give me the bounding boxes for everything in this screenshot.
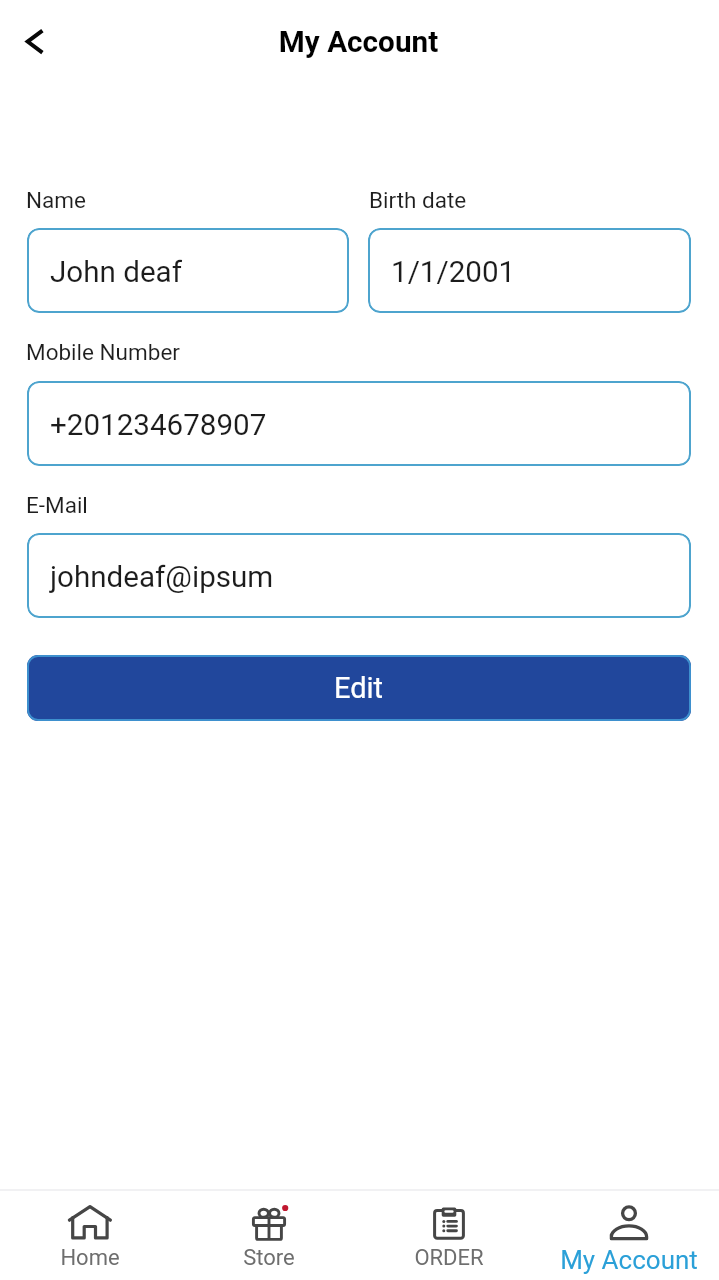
button[interactable]: Store [179, 1191, 359, 1271]
staticText: My Account [560, 1245, 698, 1275]
staticText: E-Mail [26, 492, 88, 518]
staticText: Edit [334, 671, 384, 705]
button[interactable]: +201234678907 [27, 381, 691, 466]
staticText: Birth date [369, 187, 467, 213]
button[interactable]: 1/1/2001 [368, 228, 691, 313]
staticText: John deaf [50, 255, 182, 290]
button[interactable]: John deaf [27, 228, 349, 313]
staticText: +201234678907 [50, 408, 267, 443]
button[interactable]: johndeaf@ipsum [27, 533, 691, 618]
staticText: 1/1/2001 [391, 255, 516, 290]
staticText: johndeaf@ipsum [50, 560, 274, 595]
button[interactable]: ORDER [359, 1191, 539, 1271]
button[interactable]: Home [0, 1191, 179, 1271]
button[interactable]: Edit [27, 655, 691, 721]
button[interactable]: Back [10, 17, 58, 65]
staticText: Mobile Number [26, 339, 180, 365]
staticText: Store [243, 1245, 295, 1271]
button[interactable]: My Account [539, 1191, 719, 1275]
staticText: My Account [0, 24, 718, 59]
staticText: Name [26, 187, 86, 213]
staticText: ORDER [414, 1245, 484, 1271]
staticText: Home [60, 1245, 120, 1271]
